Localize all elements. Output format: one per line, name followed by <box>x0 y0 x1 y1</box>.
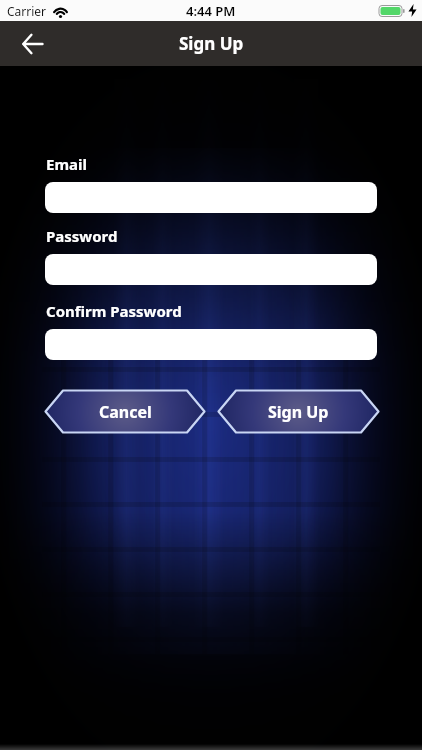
staticText: Password <box>46 226 118 246</box>
button[interactable] <box>12 24 52 64</box>
staticText: Cancel <box>99 401 152 423</box>
button[interactable] <box>45 254 377 285</box>
button[interactable] <box>45 329 377 360</box>
staticText: Email <box>46 154 87 174</box>
button[interactable]: Cancel <box>44 389 206 434</box>
button[interactable] <box>45 182 377 213</box>
staticText: Sign Up <box>179 32 244 55</box>
staticText: 4:44 PM <box>186 2 236 20</box>
staticText: Carrier <box>7 3 47 19</box>
staticText: Confirm Password <box>46 301 182 321</box>
staticText: Sign Up <box>268 401 329 423</box>
button[interactable]: Sign Up <box>217 389 380 434</box>
